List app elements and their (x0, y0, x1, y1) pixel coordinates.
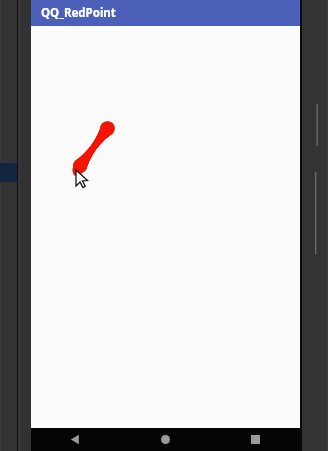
button[interactable]: Home (120, 428, 210, 451)
button[interactable]: Drawing canvas (31, 26, 300, 428)
staticText: QQ_RedPoint (41, 5, 116, 21)
button[interactable]: Back (31, 428, 120, 451)
button[interactable]: Recent apps (210, 428, 300, 451)
button[interactable]: QQ_RedPoint (31, 0, 300, 26)
